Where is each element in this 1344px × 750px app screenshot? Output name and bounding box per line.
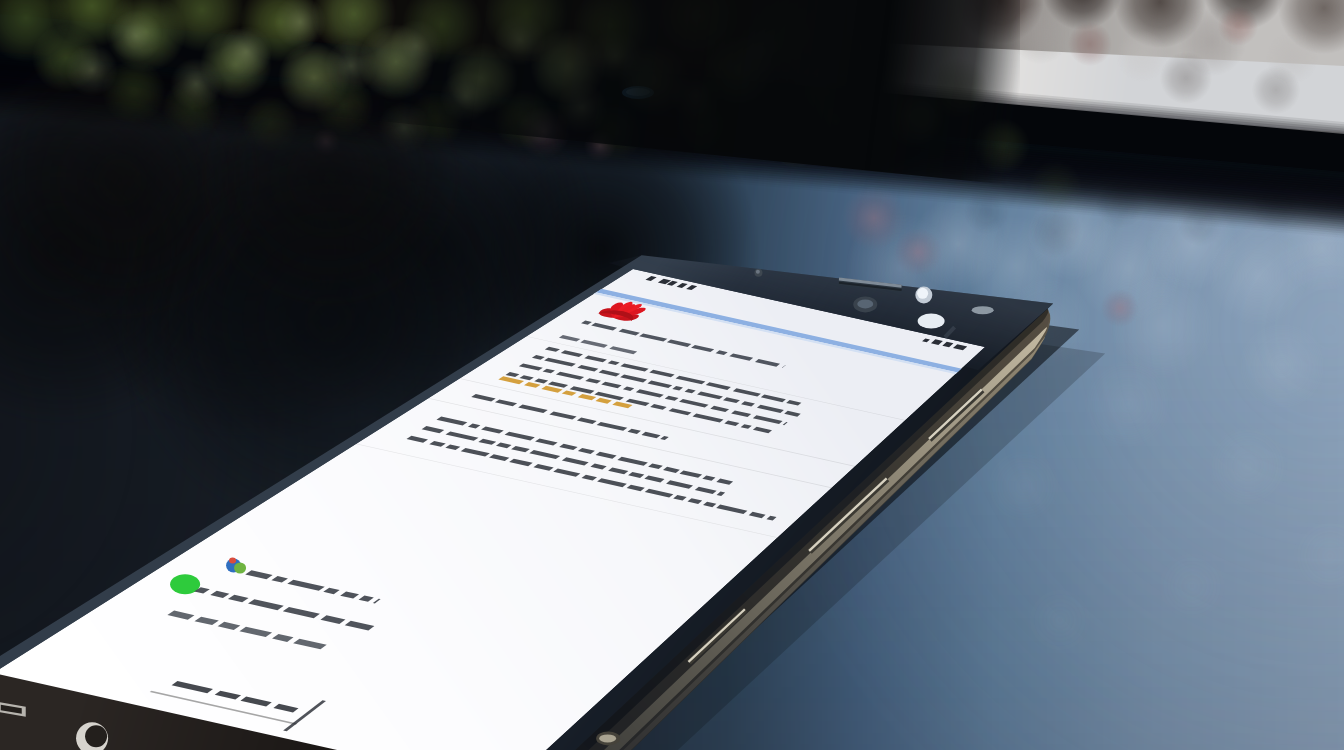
- button[interactable]: Phone screen showing a web page: [0, 0, 1344, 750]
